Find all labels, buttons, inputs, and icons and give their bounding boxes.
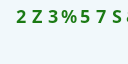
staticText: S — [112, 4, 122, 29]
staticText: 3 — [48, 4, 59, 29]
staticText: % — [61, 4, 78, 29]
staticText: 2 — [16, 4, 27, 29]
staticText: 7 — [96, 4, 107, 29]
staticText: & — [126, 4, 128, 29]
staticText: Z — [32, 4, 43, 29]
staticText: 5 — [80, 4, 91, 29]
